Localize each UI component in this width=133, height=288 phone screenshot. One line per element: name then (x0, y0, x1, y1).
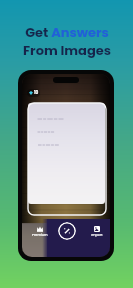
staticText: Import (91, 232, 103, 237)
staticText: Premium (32, 232, 48, 237)
button[interactable]: Scan document (58, 222, 76, 240)
staticText: From Images (23, 41, 111, 59)
button[interactable]: Import (88, 226, 105, 237)
button[interactable]: Premium (31, 226, 48, 237)
staticText: Get Answers (25, 23, 109, 41)
button[interactable]: 10 (27, 89, 40, 97)
staticText: 10 (34, 90, 39, 96)
